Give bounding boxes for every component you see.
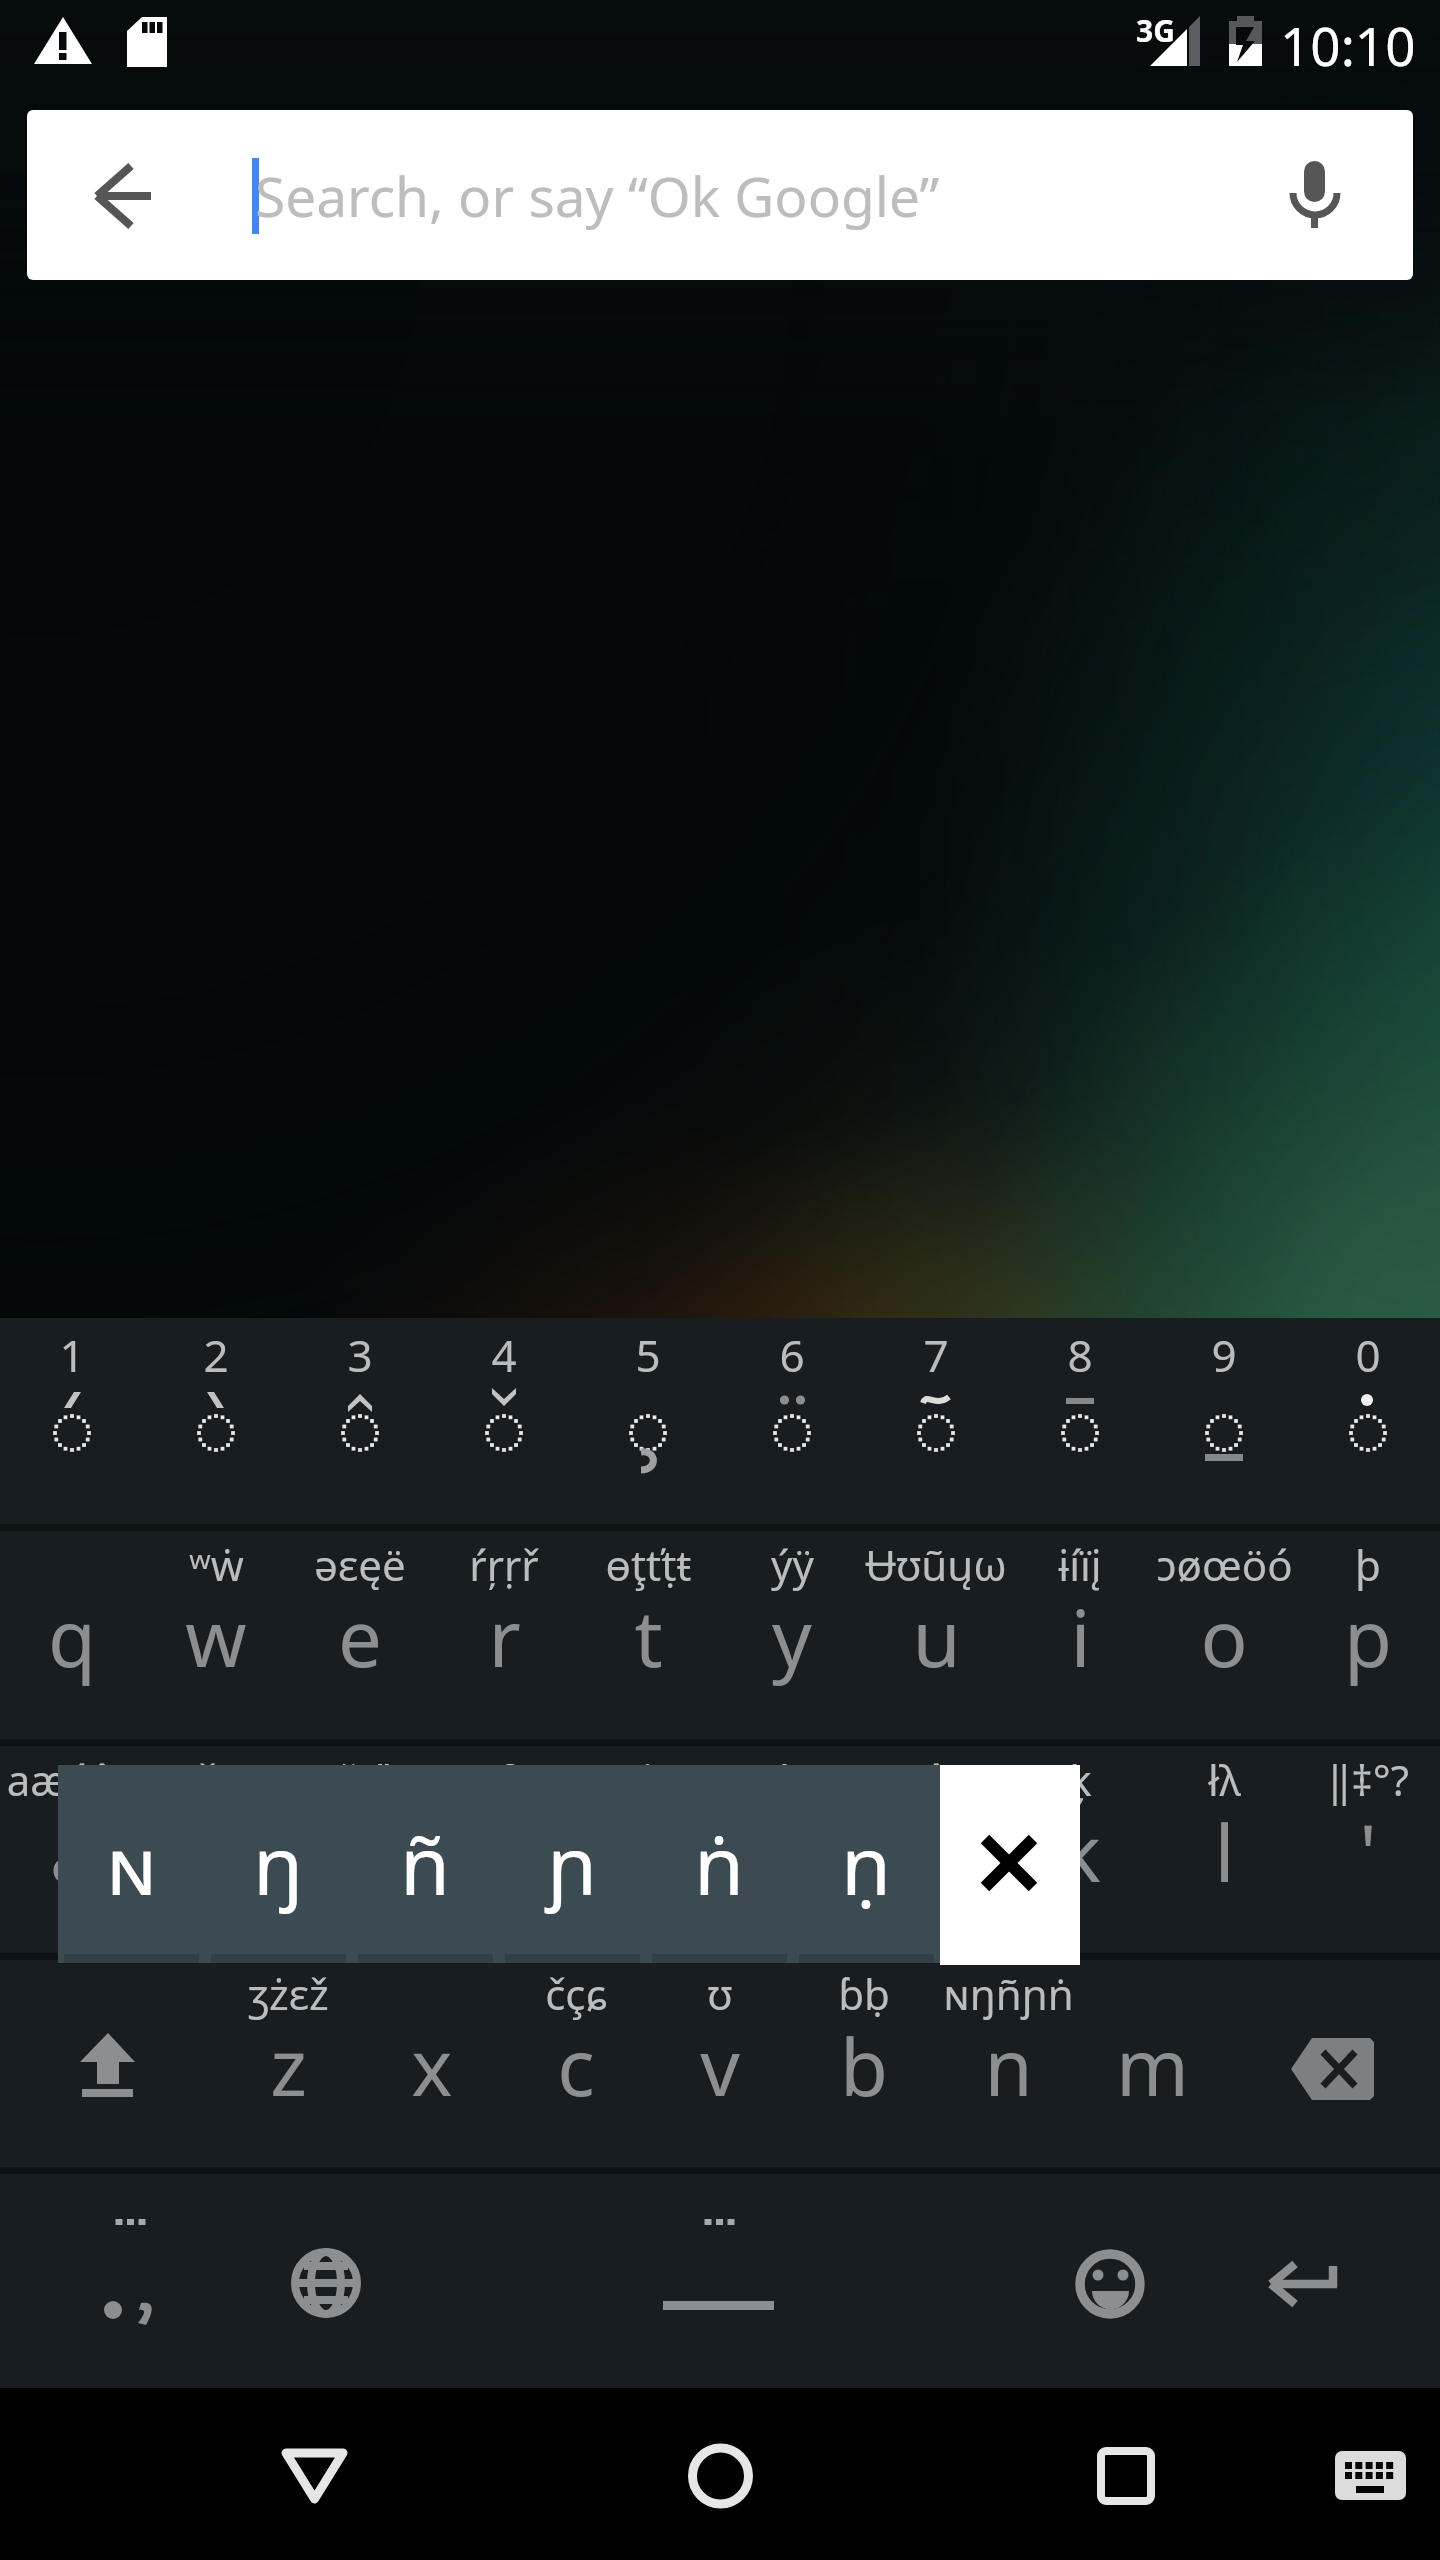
staticText: ɲ — [547, 1808, 598, 1918]
button[interactable]: Home — [640, 2388, 800, 2560]
staticText: ġ — [635, 1751, 661, 1808]
button[interactable]: ṅ — [646, 1765, 793, 1963]
staticText: e — [338, 1584, 382, 1690]
staticText: ɴ — [106, 1808, 158, 1918]
staticText: 0 — [1355, 1325, 1381, 1385]
staticText: b — [840, 2013, 888, 2119]
staticText: 8 — [1067, 1325, 1093, 1385]
staticText: þ — [1355, 1536, 1381, 1593]
staticText: m — [1116, 2013, 1189, 2119]
staticText: Search, or say “Ok Google” — [255, 158, 940, 233]
button[interactable]: ŋ — [205, 1765, 352, 1963]
button[interactable]: ɴ — [58, 1765, 205, 1963]
staticText: 4 — [491, 1325, 517, 1385]
staticText: w — [185, 1584, 247, 1690]
staticText: ķ — [1069, 1751, 1092, 1808]
button[interactable]: Recents — [1045, 2388, 1205, 2560]
staticText: ‖‡°? — [1328, 1751, 1409, 1808]
staticText: 7 — [923, 1325, 949, 1385]
staticText: čçɕ — [545, 1965, 608, 2022]
staticText: v — [700, 2013, 740, 2119]
staticText: ɨíïį — [1058, 1536, 1102, 1593]
staticText: 1 — [59, 1325, 85, 1385]
staticText: ƒ — [495, 1751, 513, 1808]
staticText: ɔøœöó — [1156, 1536, 1293, 1593]
staticText: ŕŗṛř — [469, 1536, 539, 1593]
staticText: ṇ — [841, 1808, 892, 1918]
staticText: x — [411, 2013, 453, 2119]
button[interactable]: Search, or say “Ok Google” — [27, 110, 1413, 280]
staticText: j — [926, 1799, 947, 1905]
staticText: t — [634, 1584, 663, 1690]
button[interactable]: Hide keyboard — [1310, 2388, 1430, 2560]
staticText: ʊ — [707, 1965, 733, 2022]
staticText: ʷẇ — [189, 1536, 244, 1593]
staticText: 6 — [779, 1325, 805, 1385]
staticText: 2 — [203, 1325, 229, 1385]
staticText: 9 — [1211, 1325, 1237, 1385]
staticText: z — [270, 2013, 307, 2119]
staticText: əɛęë — [314, 1536, 406, 1593]
staticText: 3G — [1136, 10, 1175, 51]
staticText: ʒżɛž — [248, 1965, 329, 2022]
staticText: Ʉʊũųω — [865, 1536, 1007, 1593]
staticText: ṅ — [694, 1808, 745, 1918]
staticText: 3 — [347, 1325, 373, 1385]
staticText: ɓḅ — [838, 1965, 890, 2022]
button[interactable]: Back — [235, 2388, 395, 2560]
staticText: i — [1070, 1584, 1091, 1690]
staticText: k — [1059, 1799, 1101, 1905]
staticText: u — [912, 1584, 961, 1690]
staticText: ħ — [779, 1751, 805, 1808]
staticText: q — [48, 1584, 96, 1690]
staticText: ñ — [400, 1808, 451, 1918]
button[interactable]: ñ — [352, 1765, 499, 1963]
staticText: 10:10 — [1280, 9, 1440, 81]
staticText: 5 — [635, 1325, 661, 1385]
staticText: y — [772, 1584, 812, 1690]
staticText: l — [1214, 1799, 1235, 1905]
button[interactable]: ɲ — [499, 1765, 646, 1963]
staticText: aæáâãà — [0, 1751, 144, 1865]
staticText: ' — [1359, 1799, 1377, 1905]
staticText: ŋ — [253, 1808, 304, 1918]
button[interactable]: Cancel — [940, 1765, 1080, 1965]
staticText: äšşș — [174, 1751, 258, 1808]
staticText: a — [50, 1799, 94, 1905]
staticText: n — [984, 2013, 1033, 2119]
staticText: ýÿ — [771, 1536, 814, 1593]
staticText: łλ — [1208, 1751, 1241, 1808]
staticText: c — [557, 2013, 595, 2119]
staticText: r — [488, 1584, 521, 1690]
staticText: p — [1344, 1584, 1392, 1690]
button[interactable]: ṇ — [793, 1765, 940, 1963]
staticText: ðď — [334, 1751, 386, 1808]
staticText: ĵ — [931, 1751, 942, 1808]
staticText: o — [1200, 1584, 1248, 1690]
staticText: ɴŋñɲṅ — [943, 1965, 1074, 2022]
staticText: ɵţťṭŧ — [605, 1536, 692, 1593]
